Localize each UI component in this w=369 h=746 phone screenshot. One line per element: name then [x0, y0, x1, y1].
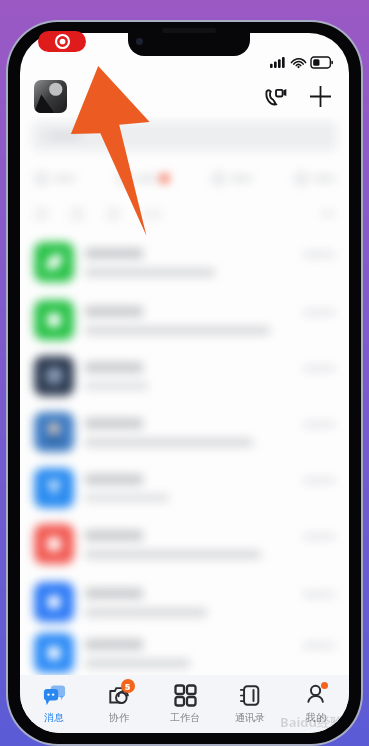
- button[interactable]: 工作台: [153, 675, 217, 733]
- button[interactable]: Search: [32, 121, 337, 151]
- staticText: Baidu经验: [280, 713, 343, 731]
- button[interactable]: [20, 573, 349, 631]
- staticText: 我的: [306, 711, 326, 724]
- staticText: 工作台: [170, 711, 200, 724]
- button[interactable]: Profile: [34, 80, 67, 113]
- button[interactable]: 5: [87, 675, 151, 733]
- staticText: 协作: [109, 711, 129, 724]
- button[interactable]: Recording: [38, 31, 86, 52]
- staticText: 5: [125, 680, 131, 692]
- button[interactable]: [20, 631, 349, 675]
- button[interactable]: Add: [305, 81, 335, 111]
- button[interactable]: [20, 349, 349, 403]
- button[interactable]: 通讯录: [218, 675, 282, 733]
- staticText: 消息: [44, 711, 64, 724]
- button[interactable]: [20, 515, 349, 573]
- button[interactable]: [20, 461, 349, 515]
- button[interactable]: Video call: [261, 81, 291, 111]
- button[interactable]: [20, 291, 349, 349]
- button[interactable]: [20, 233, 349, 291]
- button[interactable]: 我的: [284, 675, 348, 733]
- button[interactable]: [20, 403, 349, 461]
- staticText: 通讯录: [235, 711, 265, 724]
- button[interactable]: 消息: [22, 675, 86, 733]
